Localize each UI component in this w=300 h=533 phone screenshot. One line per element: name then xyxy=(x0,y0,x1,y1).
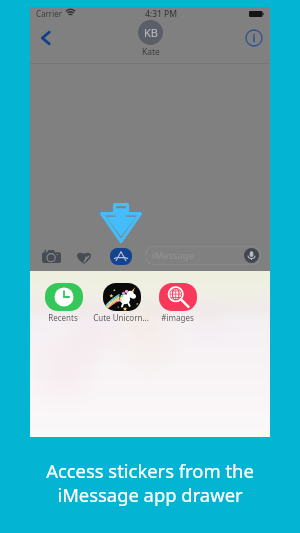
staticText: Cute Unicorn... xyxy=(93,312,149,323)
button[interactable]: iMessage xyxy=(145,246,261,265)
button[interactable]: Back xyxy=(33,25,59,51)
button[interactable]: Details xyxy=(245,29,263,47)
staticText: KB xyxy=(144,25,158,40)
button[interactable] xyxy=(44,283,83,323)
button[interactable] xyxy=(102,283,141,323)
button[interactable]: Camera xyxy=(42,249,61,264)
staticText: #images xyxy=(161,312,194,323)
button[interactable] xyxy=(158,283,197,323)
button[interactable]: Digital Touch xyxy=(75,249,93,265)
staticText: iMessage xyxy=(152,249,195,262)
staticText: Recents xyxy=(48,312,78,323)
button[interactable]: App Store xyxy=(110,248,132,265)
staticText: Kate xyxy=(142,46,160,58)
staticText: 4:31 PM xyxy=(145,8,178,20)
staticText: Carrier xyxy=(36,8,63,19)
staticText: Access stickers from the iMessage app dr… xyxy=(0,458,300,507)
